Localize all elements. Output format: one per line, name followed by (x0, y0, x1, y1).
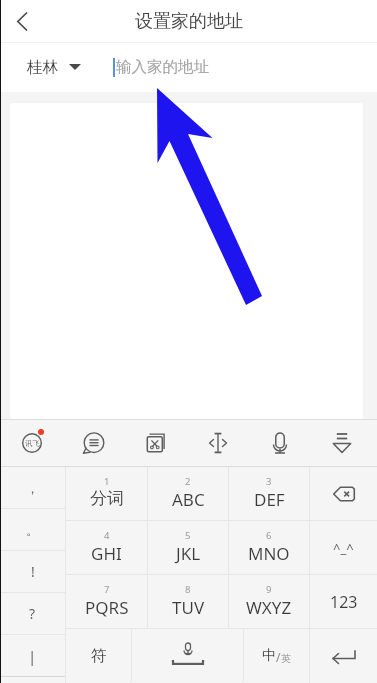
button[interactable]: Hide keyboard (311, 420, 373, 466)
staticText: WXYZ (246, 596, 292, 619)
button[interactable]: ， (0, 467, 65, 508)
staticText: ， (26, 480, 39, 496)
button[interactable]: Enter (310, 629, 377, 682)
button[interactable]: Phrases (63, 420, 125, 466)
button[interactable]: 桂林 (27, 42, 81, 92)
staticText: ? (29, 604, 36, 623)
staticText: / (276, 649, 281, 665)
button[interactable]: 1 (66, 467, 147, 520)
button[interactable]: Move cursor (187, 420, 249, 466)
staticText: 3 (266, 475, 272, 488)
staticText: 分词 (90, 488, 124, 509)
button[interactable]: Back (2, 0, 42, 42)
button[interactable]: 4 (66, 521, 147, 574)
staticText: ABC (172, 488, 205, 511)
staticText: 输入家的地址 (116, 57, 209, 77)
staticText: 4 (104, 529, 110, 542)
staticText: MNO (248, 542, 290, 565)
button[interactable]: 输入家的地址 (113, 42, 377, 92)
staticText: 123 (330, 591, 358, 613)
staticText: 1 (104, 475, 110, 488)
button[interactable]: 。 (0, 509, 65, 550)
staticText: 6 (266, 529, 272, 542)
staticText: ^_^ (333, 539, 354, 557)
button[interactable]: 中 (244, 629, 309, 682)
staticText: 。 (26, 522, 39, 538)
staticText: 5 (185, 529, 191, 542)
staticText: 9 (266, 583, 272, 596)
staticText: 7 (104, 583, 110, 596)
button[interactable]: 2 (148, 467, 228, 520)
staticText: | (28, 646, 37, 666)
button[interactable]: 123 (310, 575, 377, 628)
button[interactable]: ? (0, 593, 65, 634)
staticText: 2 (185, 475, 191, 488)
staticText: 桂林 (27, 57, 58, 77)
button[interactable]: ! (0, 551, 65, 592)
staticText: 8 (185, 583, 191, 596)
staticText: TUV (172, 596, 205, 619)
button[interactable]: 8 (148, 575, 228, 628)
button[interactable]: Voice input (249, 420, 311, 466)
button[interactable]: 7 (66, 575, 147, 628)
staticText: PQRS (85, 596, 129, 619)
button[interactable]: Clipboard (125, 420, 187, 466)
button[interactable]: Space (132, 629, 243, 682)
button[interactable]: Emoticons (310, 521, 377, 574)
staticText: GHI (91, 542, 122, 565)
button[interactable]: 6 (229, 521, 309, 574)
button[interactable]: 3 (229, 467, 309, 520)
staticText: 中 (262, 647, 276, 665)
button[interactable]: | (0, 635, 65, 676)
staticText: DEF (254, 488, 285, 511)
staticText: 英 (281, 652, 291, 665)
button[interactable]: Backspace (310, 467, 377, 520)
button[interactable]: Input method (1, 420, 63, 466)
staticText: 设置家的地址 (135, 10, 243, 33)
staticText: 符 (91, 646, 107, 666)
staticText: 讯飞 (25, 439, 40, 448)
staticText: JKL (176, 542, 201, 565)
staticText: ! (31, 562, 35, 581)
button[interactable]: 5 (148, 521, 228, 574)
button[interactable]: 9 (229, 575, 309, 628)
button[interactable]: 符 (66, 629, 131, 682)
